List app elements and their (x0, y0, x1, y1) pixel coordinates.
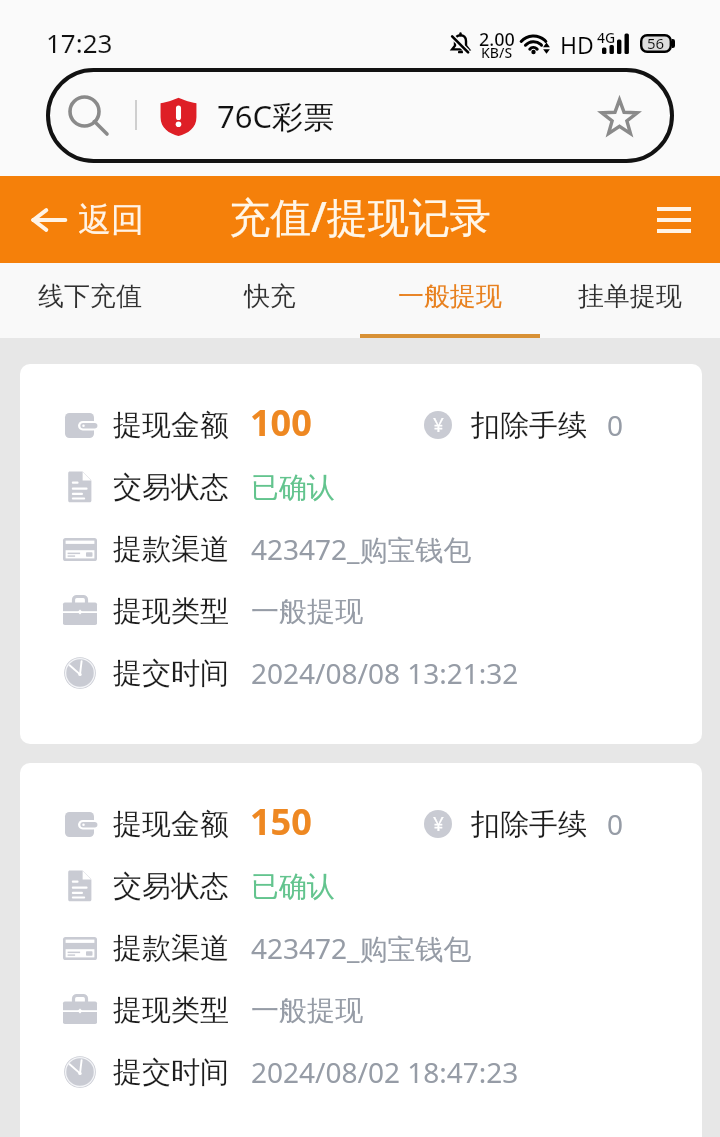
staticText: 2024/08/08 13:21:32 (251, 654, 519, 692)
staticText: 挂单提现 (578, 280, 682, 313)
button[interactable]: 挂单提现 (540, 263, 720, 338)
staticText: 提现类型 (113, 992, 229, 1029)
button[interactable]: 返回 (32, 176, 144, 263)
staticText: 充值/提现记录 (229, 188, 491, 244)
staticText: KB/S (481, 43, 513, 62)
staticText: 提交时间 (113, 655, 229, 692)
staticText: 快充 (244, 280, 296, 313)
button[interactable]: 提现金额 (20, 364, 702, 744)
button[interactable]: 一般提现 (360, 263, 540, 338)
staticText: 提交时间 (113, 1054, 229, 1091)
staticText: 提现金额 (113, 407, 229, 444)
staticText: 扣除手续 (471, 806, 587, 843)
button[interactable]: Bookmark (586, 84, 650, 148)
button[interactable]: Search (46, 68, 674, 163)
staticText: 提现金额 (113, 806, 229, 843)
button[interactable]: 线下充值 (0, 263, 180, 338)
staticText: 2024/08/02 18:47:23 (251, 1053, 519, 1091)
staticText: 交易状态 (113, 868, 229, 905)
staticText: 线下充值 (38, 280, 142, 313)
staticText: 扣除手续 (471, 407, 587, 444)
staticText: 423472_购宝钱包 (251, 530, 472, 568)
staticText: 100 (250, 398, 312, 447)
staticText: 4G (597, 28, 616, 47)
staticText: 一般提现 (251, 993, 363, 1028)
staticText: 返回 (78, 199, 144, 241)
staticText: 423472_购宝钱包 (251, 929, 472, 967)
staticText: 提款渠道 (113, 930, 229, 967)
staticText: 提现类型 (113, 593, 229, 630)
staticText: 56 (647, 33, 665, 53)
staticText: 已确认 (251, 869, 335, 904)
staticText: 150 (250, 797, 312, 846)
staticText: 一般提现 (251, 594, 363, 629)
staticText: 76C彩票 (217, 95, 335, 137)
staticText: 一般提现 (398, 280, 502, 313)
button[interactable]: Search (59, 86, 120, 147)
button[interactable]: 快充 (180, 263, 360, 338)
staticText: ¥ (433, 412, 444, 438)
staticText: 0 (607, 406, 624, 444)
button[interactable]: 提现金额 (20, 763, 702, 1137)
button[interactable]: Menu (644, 190, 704, 250)
staticText: 提款渠道 (113, 531, 229, 568)
staticText: HD (560, 29, 594, 60)
staticText: ¥ (433, 811, 444, 837)
staticText: 17:23 (46, 25, 113, 60)
staticText: 交易状态 (113, 469, 229, 506)
staticText: 2.00 (479, 27, 515, 52)
staticText: 已确认 (251, 470, 335, 505)
staticText: 0 (607, 805, 624, 843)
